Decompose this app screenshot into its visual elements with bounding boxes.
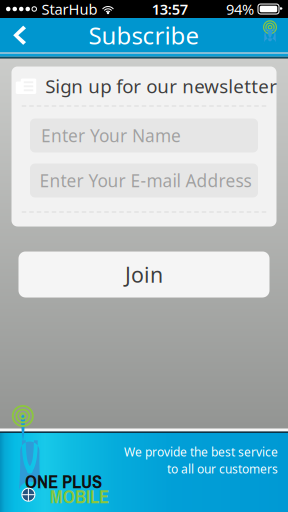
- button[interactable]: Back: [0, 18, 40, 52]
- button[interactable]: Join: [18, 251, 269, 297]
- staticText: ONE PLUS: [25, 469, 102, 494]
- staticText: Sign up for our newsletter: [45, 74, 277, 98]
- staticText: to all our customers: [167, 461, 278, 477]
- staticText: Subscribe: [88, 19, 199, 51]
- staticText: We provide the best service: [124, 444, 278, 460]
- button[interactable]: Enter Your E-mail Address: [30, 163, 258, 197]
- button[interactable]: One Plus Mobile: [252, 18, 288, 52]
- staticText: StarHub: [41, 0, 97, 19]
- staticText: Enter Your E-mail Address: [39, 169, 251, 192]
- staticText: 13:57: [152, 0, 188, 19]
- staticText: Join: [125, 260, 163, 289]
- staticText: Enter Your Name: [41, 124, 181, 147]
- staticText: MOBILE: [50, 484, 109, 509]
- staticText: 94%: [226, 0, 254, 19]
- button[interactable]: Enter Your Name: [30, 118, 258, 152]
